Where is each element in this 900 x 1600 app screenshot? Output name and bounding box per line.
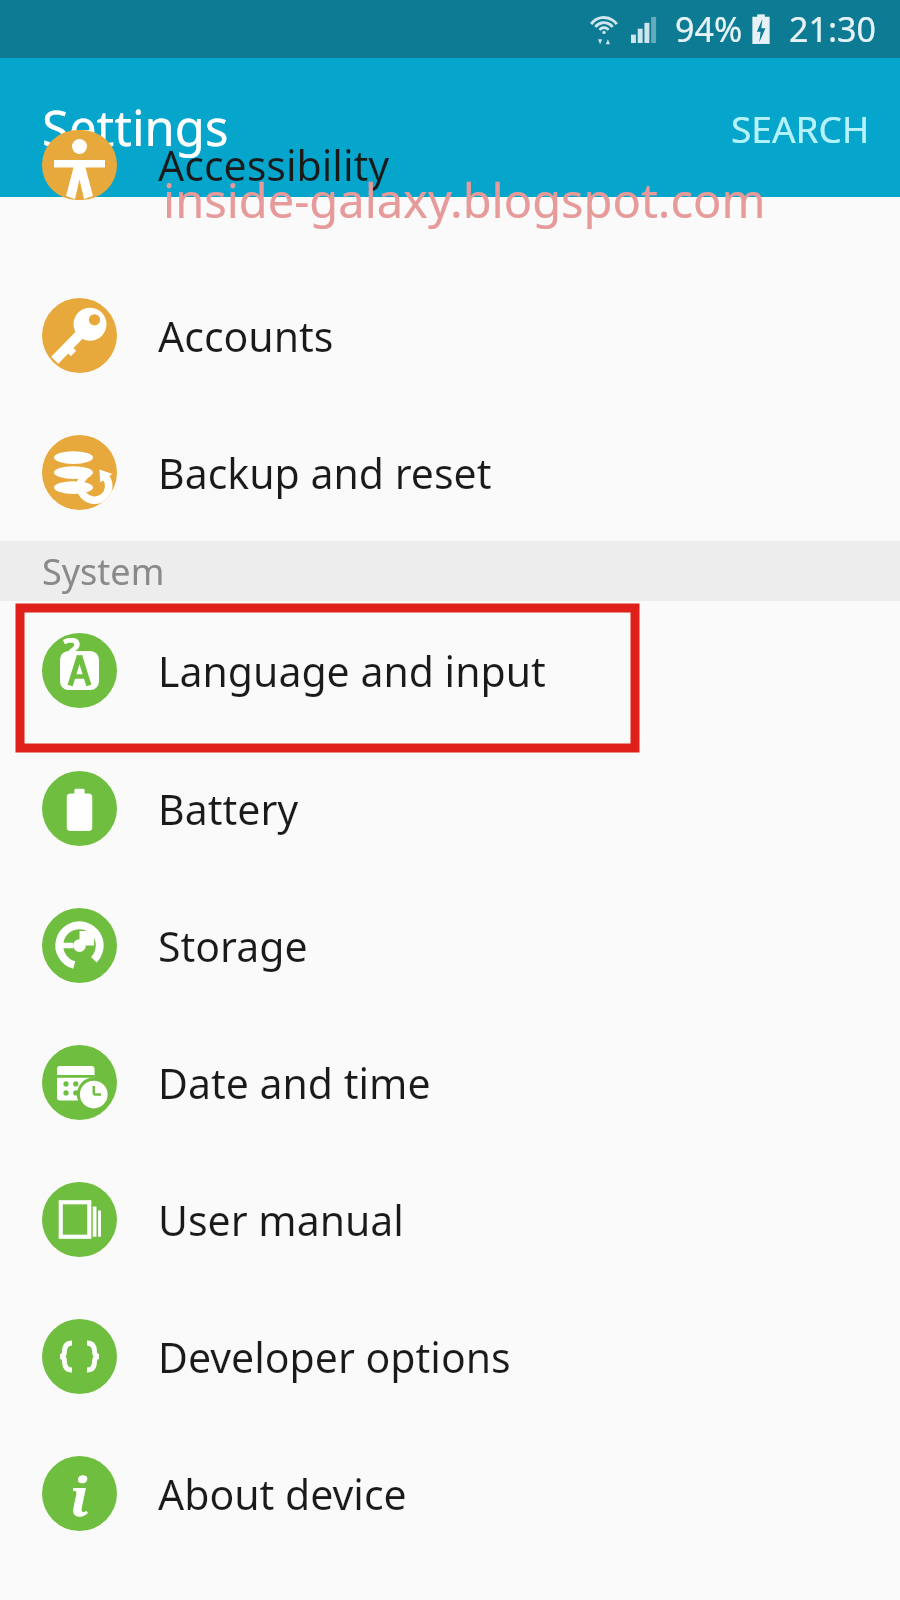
button[interactable]: Accessibility (0, 197, 900, 267)
staticText: Developer options (158, 1329, 511, 1385)
staticText: Backup and reset (158, 445, 492, 501)
button[interactable]: Accounts (0, 267, 900, 404)
staticText: About device (158, 1466, 407, 1522)
staticText: 21:30 (789, 6, 876, 52)
staticText: Accessibility (158, 137, 390, 193)
staticText: inside-galaxy.blogspot.com (163, 168, 766, 232)
button[interactable]: Battery (0, 740, 900, 877)
staticText: i (70, 1460, 89, 1531)
button[interactable]: SEARCH (701, 83, 900, 173)
staticText: User manual (158, 1192, 404, 1248)
staticText: Battery (158, 781, 299, 837)
button[interactable]: Developer options (0, 1288, 900, 1425)
button[interactable]: Date and time (0, 1014, 900, 1151)
button[interactable]: Storage (0, 877, 900, 1014)
staticText: 94% (675, 6, 743, 52)
staticText: Storage (158, 918, 308, 974)
staticText: Language and input (158, 643, 546, 699)
staticText: System (42, 547, 165, 596)
button[interactable]: About device (0, 1425, 900, 1562)
button[interactable]: User manual (0, 1151, 900, 1288)
button[interactable]: Backup and reset (0, 404, 900, 541)
button[interactable]: Language and input (0, 601, 900, 740)
button[interactable]: Accessibility (0, 130, 900, 200)
staticText: Accounts (158, 308, 334, 364)
staticText: SEARCH (731, 103, 870, 153)
staticText: Date and time (158, 1055, 431, 1111)
staticText: ? (63, 626, 81, 675)
staticText: Settings (42, 94, 229, 161)
